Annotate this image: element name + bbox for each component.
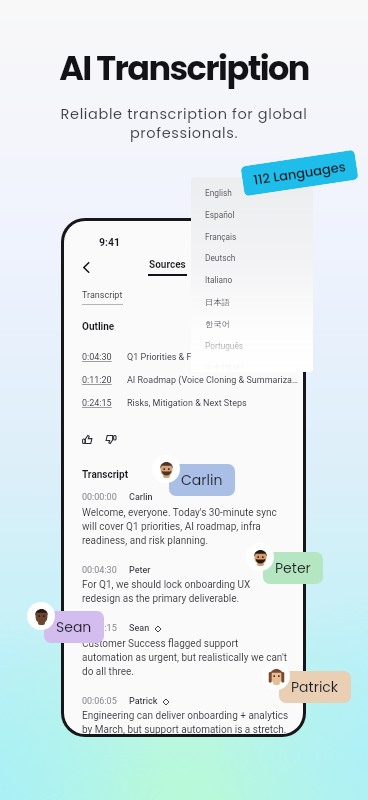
staticText: Peter [275,558,311,578]
staticText: Outline [82,321,115,333]
staticText: Français [205,232,237,242]
staticText: Patrick [291,677,339,697]
button[interactable]: Sean [44,611,104,643]
staticText: Engineering can deliver onboarding + ana… [82,710,290,734]
staticText: 日本語 [205,297,230,307]
staticText: Customer Success flagged support automat… [82,638,290,678]
button[interactable]: Like [80,432,94,446]
staticText: 00:06:05 [82,696,117,707]
staticText: Português [205,341,244,351]
staticText: 한국어 [205,319,230,329]
staticText: Carlin [129,492,153,503]
staticText: Sean [56,617,92,637]
button[interactable]: 112 Languages [240,150,359,196]
staticText: 0:11:20 [82,375,127,386]
button[interactable]: Français [191,232,313,254]
button[interactable]: Italiano [191,275,313,297]
button[interactable]: English [191,188,313,210]
button[interactable]: Carlin [169,464,235,496]
staticText: Español [205,210,235,220]
staticText: 112 Languages [252,157,347,189]
staticText: 00:05:15 [82,623,117,634]
button[interactable]: 한국어 [191,319,313,341]
staticText: AI Transcription [59,45,309,92]
staticText: 00:04:30 [82,565,117,576]
button[interactable]: 日本語 [191,297,313,319]
staticText: Deutsch [205,253,236,263]
staticText: 9:41 [99,236,121,248]
button[interactable]: Sources [148,259,187,276]
button[interactable]: Deutsch [191,253,313,275]
button[interactable]: Peter [263,552,323,584]
button[interactable]: Português [191,341,313,363]
staticText: Transcript [82,469,129,481]
staticText: Q1 Priorities & Fe [127,352,197,363]
button[interactable]: Dislike [104,432,118,446]
button[interactable]: Patrick [279,671,351,703]
staticText: Risks, Mitigation & Next Steps [127,398,247,409]
staticText: For Q1, we should lock onboarding UX red… [82,579,290,605]
button[interactable]: Back [76,257,96,277]
staticText: English [205,188,232,198]
staticText: Welcome, everyone. Today's 30-minute syn… [82,507,290,547]
staticText: AI Roadmap (Voice Cloning & Summariza… [127,375,299,386]
button[interactable]: Transcript [82,290,123,305]
staticText: Transcript [82,290,123,301]
staticText: Patrick [129,696,158,707]
staticText: Sean [129,623,150,634]
staticText: Sources [149,259,186,271]
staticText: Carlin [181,470,223,490]
staticText: 0:04:30 [82,352,127,363]
staticText: 0:24:15 [82,398,127,409]
button[interactable]: Español [191,210,313,232]
staticText: 00:00:00 [82,492,117,503]
staticText: Reliable transcription for global profes… [0,104,368,143]
staticText: Peter [129,565,151,576]
staticText: Italiano [205,275,233,285]
